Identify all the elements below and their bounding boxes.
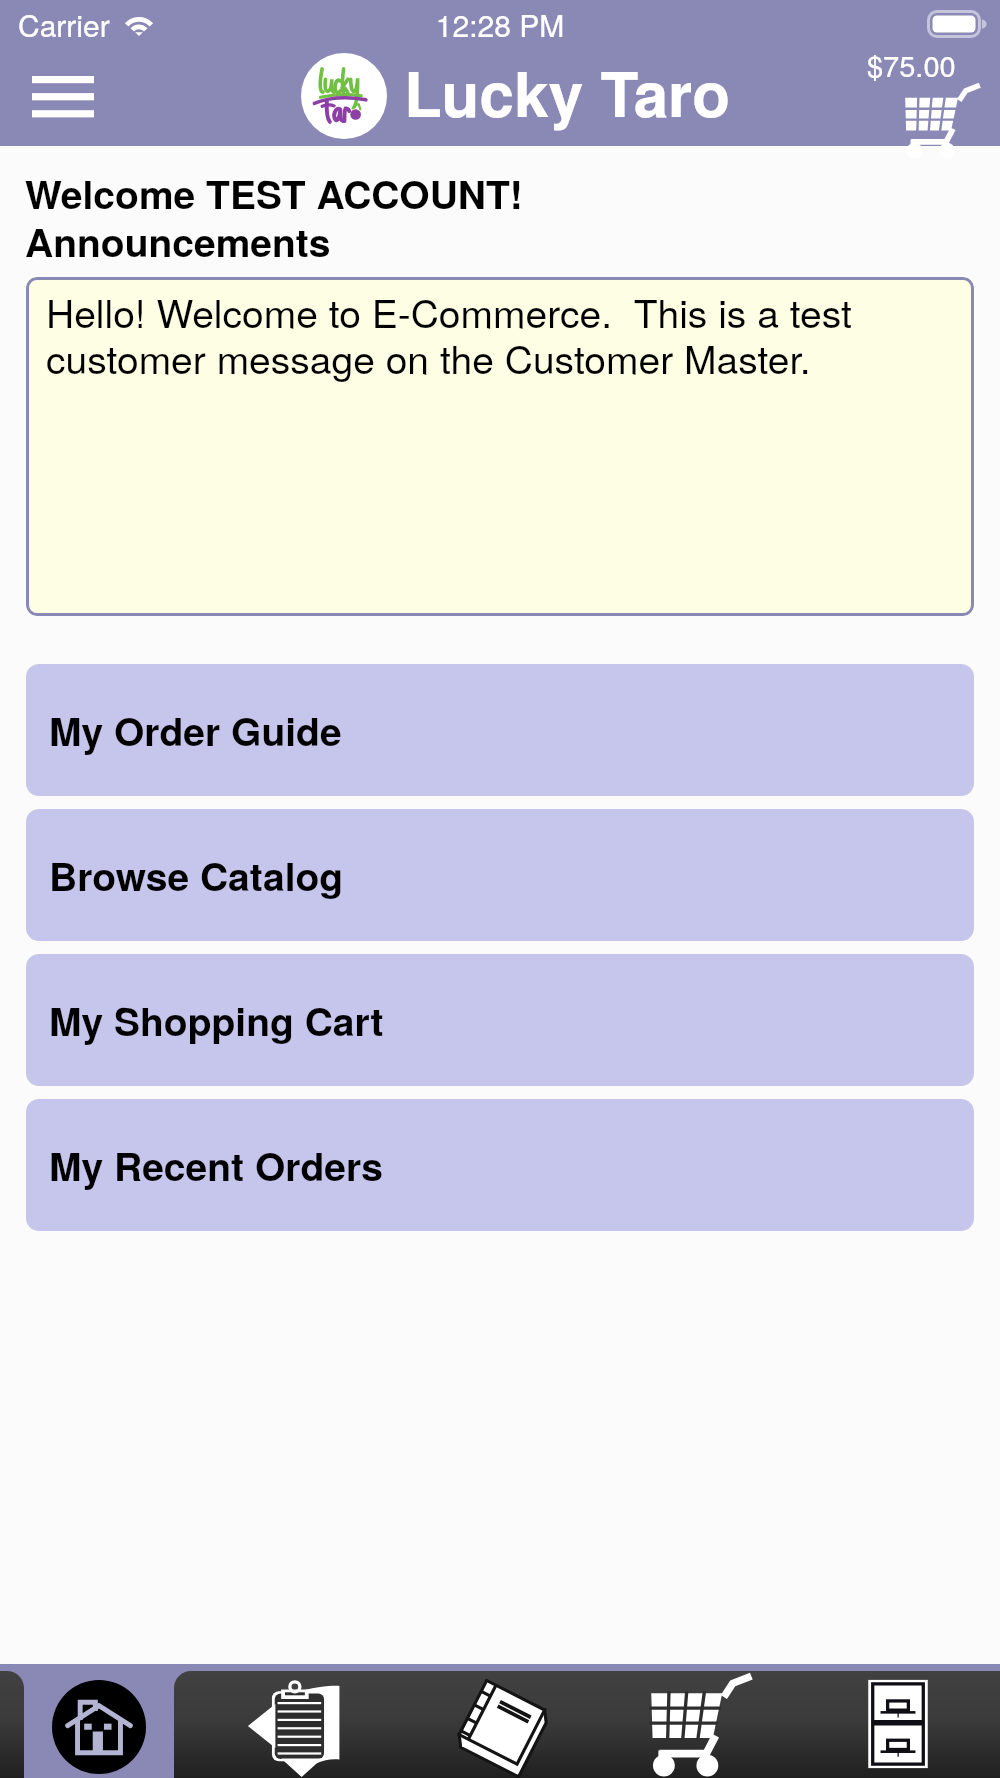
staticText: Hello! Welcome to E-Commerce. This is a … — [46, 283, 926, 385]
staticText: Announcements — [25, 213, 331, 269]
staticText: 12:28 PM — [0, 3, 1000, 46]
button[interactable]: Orders — [800, 1664, 1000, 1778]
button[interactable]: Cart — [600, 1664, 800, 1778]
staticText: My Recent Orders — [49, 1137, 383, 1193]
staticText: Welcome TEST ACCOUNT! — [25, 165, 523, 221]
button[interactable]: Home — [0, 1664, 200, 1778]
button[interactable]: Catalog — [400, 1664, 600, 1778]
staticText: My Order Guide — [49, 702, 342, 758]
button[interactable]: My Recent Orders — [26, 1099, 974, 1231]
button[interactable]: Menu — [0, 50, 125, 146]
button[interactable]: Shopping cart — [850, 48, 1000, 146]
staticText: Browse Catalog — [49, 847, 344, 903]
button[interactable]: Browse Catalog — [26, 809, 974, 941]
button[interactable]: My Shopping Cart — [26, 954, 974, 1086]
staticText: Lucky Taro — [404, 47, 731, 136]
staticText: Carrier — [18, 3, 110, 46]
staticText: My Shopping Cart — [49, 992, 384, 1048]
button[interactable]: My Order Guide — [26, 664, 974, 796]
staticText: $75.00 — [867, 44, 956, 86]
button[interactable]: Order Guide — [200, 1664, 400, 1778]
